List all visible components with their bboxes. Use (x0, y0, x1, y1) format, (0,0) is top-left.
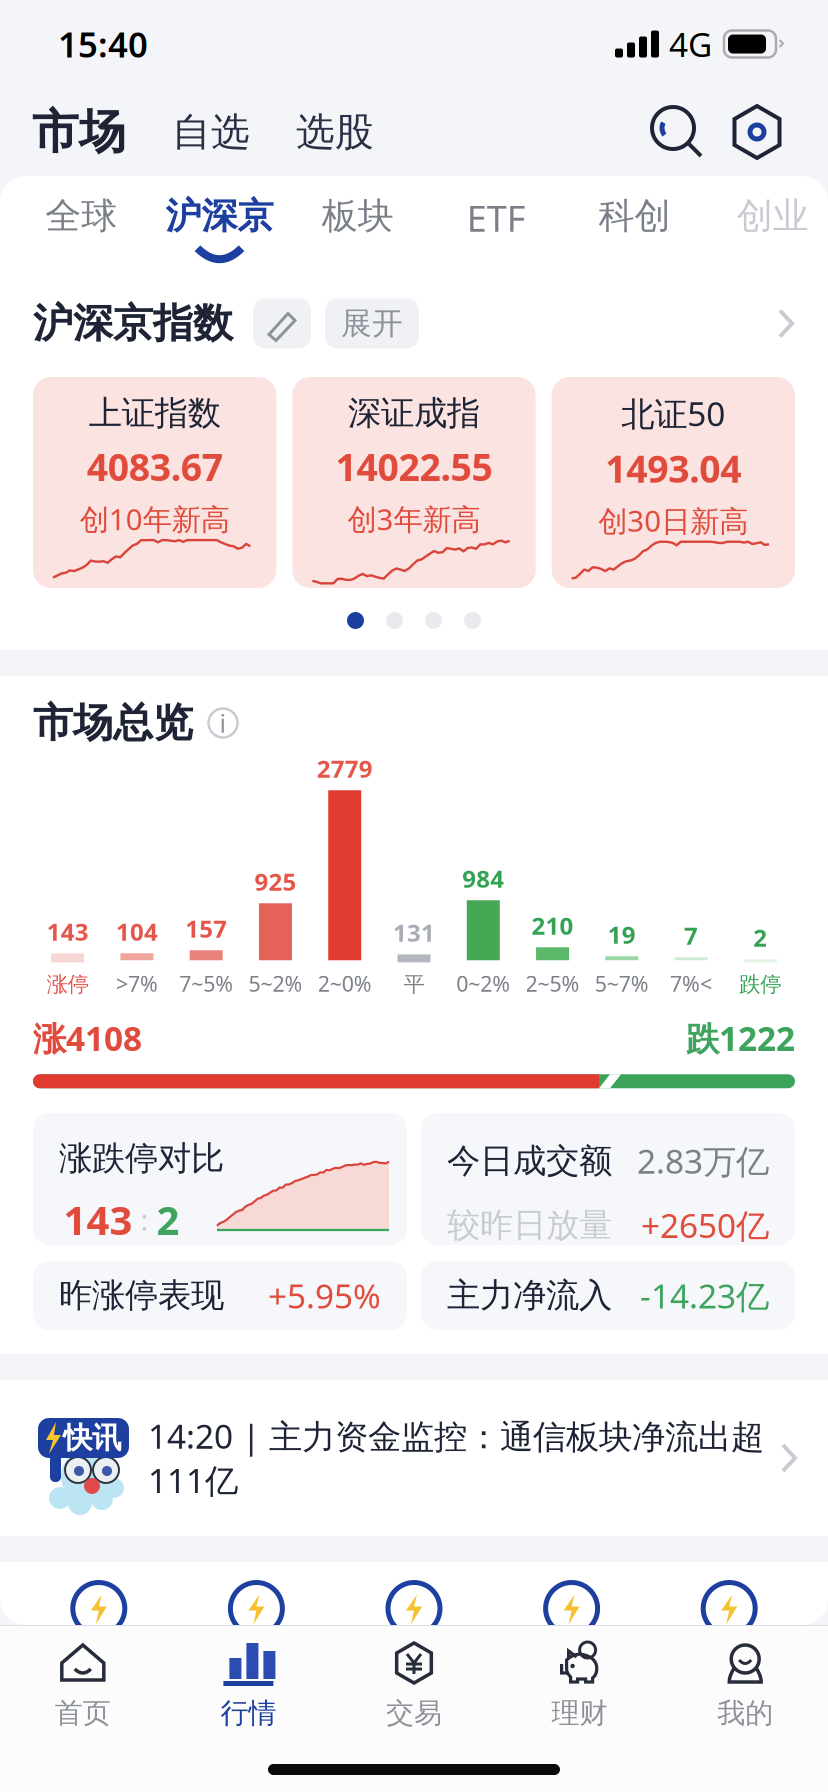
button[interactable]: 主力净流入 (421, 1261, 795, 1330)
staticText: 210 (531, 909, 573, 941)
button[interactable]: 选股 (250, 108, 374, 156)
staticText: 科创 (598, 194, 670, 238)
staticText: 0~2% (456, 969, 510, 998)
staticText: 自选 (172, 108, 250, 156)
staticText: 143 (63, 1193, 132, 1246)
staticText: 2779 (317, 752, 373, 784)
staticText: 涨4108 (33, 1016, 142, 1060)
staticText: 2 (753, 921, 767, 953)
staticText: 深证成指 (348, 393, 480, 434)
staticText: 快讯 (63, 1420, 121, 1456)
button[interactable]: 设置 (706, 103, 786, 161)
staticText: 7%< (670, 969, 712, 998)
staticText: 市场 (32, 103, 126, 161)
staticText: 上证指数 (89, 393, 221, 434)
staticText: 4083.67 (87, 442, 223, 491)
staticText: +5.95% (268, 1273, 381, 1318)
button[interactable]: 理财 (497, 1638, 662, 1738)
staticText: 平 (403, 971, 424, 998)
staticText: 涨停 (47, 971, 89, 998)
staticText: 7 (684, 919, 698, 951)
staticText: 925 (254, 865, 296, 897)
staticText: 2~5% (525, 969, 579, 998)
button[interactable]: 北证50 (552, 377, 795, 588)
staticText: 市场总览 (33, 698, 193, 747)
staticText: 143 (47, 915, 89, 947)
button[interactable]: 首页 (0, 1638, 166, 1738)
staticText: ETF (467, 194, 526, 242)
staticText: 创业 (737, 194, 809, 238)
staticText: 理财 (552, 1696, 608, 1730)
staticText: 创10年新高 (80, 499, 230, 538)
staticText: 较昨日放量 (447, 1205, 612, 1246)
button[interactable]: 快讯 (0, 1380, 828, 1536)
staticText: 我的 (717, 1696, 773, 1730)
staticText: 15:40 (58, 21, 148, 67)
staticText: 首页 (55, 1696, 111, 1730)
button[interactable]: 交易 (331, 1638, 497, 1738)
button[interactable]: 今日成交额 (421, 1113, 795, 1245)
button[interactable]: 上证指数 (33, 377, 276, 588)
staticText: 创30日新高 (598, 501, 748, 540)
staticText: : (132, 1200, 156, 1239)
button[interactable]: 展开 (311, 298, 419, 348)
staticText: 创3年新高 (347, 499, 480, 538)
button[interactable]: 自选 (126, 108, 250, 156)
staticText: >7% (116, 969, 158, 998)
staticText: 昨涨停表现 (59, 1275, 224, 1316)
staticText: 展开 (341, 305, 403, 342)
staticText: 行情 (220, 1696, 276, 1730)
staticText: 沪深京指数 (33, 299, 233, 348)
button[interactable]: 编辑 (233, 298, 311, 348)
button[interactable]: 板块 (289, 176, 427, 270)
staticText: 全球 (45, 194, 117, 238)
staticText: 北证50 (621, 391, 725, 435)
staticText: 板块 (322, 194, 394, 238)
staticText: 104 (116, 915, 158, 947)
staticText: 157 (185, 912, 227, 944)
staticText: 2 (156, 1193, 179, 1246)
staticText: 跌停 (739, 971, 781, 998)
button[interactable]: 全球 (12, 176, 150, 270)
staticText: 5~2% (248, 969, 302, 998)
button[interactable]: 市场 (32, 103, 126, 161)
staticText: 主力净流入 (447, 1275, 612, 1316)
button[interactable]: 更多 (777, 307, 795, 339)
staticText: 选股 (296, 108, 374, 156)
staticText: 2.83万亿 (637, 1139, 769, 1183)
staticText: 今日成交额 (447, 1140, 612, 1181)
staticText: 131 (393, 916, 435, 948)
button[interactable]: 深证成指 (292, 377, 536, 588)
button[interactable]: 涨跌停对比 (33, 1113, 407, 1245)
button[interactable]: 创业 (704, 176, 828, 270)
staticText: -14.23亿 (640, 1273, 769, 1318)
staticText: 4G (669, 22, 712, 66)
staticText: 2~0% (318, 969, 372, 998)
button[interactable]: 沪深京 (150, 176, 289, 270)
button[interactable]: 搜索 (648, 103, 706, 161)
button[interactable]: 我的 (662, 1638, 828, 1738)
button[interactable]: ETF (427, 176, 565, 270)
button[interactable]: 科创 (565, 176, 704, 270)
staticText: 1493.04 (605, 443, 741, 493)
button[interactable]: 行情 (166, 1638, 331, 1738)
staticText: 14:20 | 主力资金监控：通信板块净流出超111亿 (148, 1414, 764, 1502)
staticText: 14022.55 (335, 442, 492, 491)
staticText: 5~7% (595, 969, 649, 998)
staticText: 涨跌停对比 (59, 1138, 224, 1179)
staticText: 984 (462, 862, 504, 894)
staticText: 19 (608, 918, 636, 950)
staticText: 跌1222 (686, 1016, 795, 1060)
staticText: 交易 (386, 1696, 442, 1730)
button[interactable]: 昨涨停表现 (33, 1261, 407, 1330)
staticText: +2650亿 (641, 1203, 769, 1247)
staticText: i (219, 706, 226, 740)
staticText: 7~5% (179, 969, 233, 998)
staticText: 沪深京 (165, 194, 273, 238)
